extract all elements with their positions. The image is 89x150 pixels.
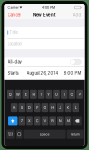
staticText: G (43, 105, 46, 110)
staticText: Starts (7, 71, 18, 76)
button[interactable]: W (15, 90, 21, 99)
staticText: D (28, 105, 31, 110)
staticText: N (59, 119, 62, 123)
button[interactable]: H (49, 103, 56, 112)
staticText: A (13, 105, 16, 110)
staticText: I (64, 92, 65, 97)
staticText: 123 (8, 132, 13, 136)
staticText: E (25, 92, 27, 97)
staticText: Q (9, 92, 12, 97)
button[interactable]: O (69, 90, 75, 99)
button[interactable]: J (57, 103, 64, 112)
button[interactable]: T (38, 90, 44, 99)
button[interactable]: S (18, 103, 25, 112)
staticText: U (55, 92, 58, 97)
button[interactable]: Cancel (4, 11, 23, 19)
button[interactable]: N (57, 116, 64, 125)
staticText: S (21, 105, 23, 110)
staticText: 8:00 PM (63, 71, 81, 76)
button[interactable]: Next keyboard (16, 130, 22, 139)
button[interactable]: Q (7, 90, 14, 99)
staticText: R (32, 92, 34, 97)
staticText: Location (7, 41, 21, 46)
staticText: All-day (7, 59, 21, 64)
staticText: V (43, 119, 46, 123)
staticText: T (40, 92, 42, 97)
staticText: August 26, 2014 (26, 71, 58, 76)
staticText: 4:00 PM (42, 5, 55, 10)
button[interactable]: A (11, 103, 17, 112)
button[interactable]: F (34, 103, 40, 112)
button[interactable]: P (76, 90, 83, 99)
staticText: W (16, 92, 20, 97)
staticText: O (70, 92, 73, 97)
button[interactable]: space (24, 130, 66, 139)
staticText: L (75, 105, 77, 110)
staticText: H (51, 105, 54, 110)
button[interactable]: Z (18, 116, 25, 125)
button[interactable]: L (72, 103, 79, 112)
button[interactable]: V (42, 116, 48, 125)
button[interactable]: return (67, 130, 84, 139)
staticText: K (66, 105, 69, 110)
button[interactable]: All-day toggle (72, 59, 81, 65)
button[interactable]: C (34, 116, 40, 125)
button[interactable]: Shift (8, 116, 17, 125)
button[interactable]: Add (69, 11, 84, 19)
button[interactable]: Delete (72, 116, 82, 125)
button[interactable]: K (65, 103, 71, 112)
button[interactable]: Title (3, 27, 85, 38)
button[interactable]: 123 (6, 130, 15, 139)
staticText: New Event (33, 12, 56, 18)
button[interactable]: X (26, 116, 33, 125)
button[interactable]: U (53, 90, 60, 99)
staticText: X (28, 119, 31, 123)
button[interactable]: B (49, 116, 56, 125)
staticText: M (66, 119, 69, 123)
staticText: Y (47, 92, 50, 97)
button[interactable]: D (26, 103, 33, 112)
staticText: B (51, 119, 54, 123)
staticText: P (79, 92, 81, 97)
staticText: J (59, 105, 61, 110)
staticText: return (71, 132, 80, 136)
staticText: space (40, 132, 50, 136)
staticText: Z (21, 119, 23, 123)
staticText: Add (72, 12, 81, 18)
staticText: F (36, 105, 38, 110)
staticText: C (36, 119, 39, 123)
button[interactable]: M (65, 116, 71, 125)
button[interactable]: R (30, 90, 37, 99)
staticText: Carrier (7, 5, 18, 10)
button[interactable]: Y (45, 90, 52, 99)
staticText: Title (9, 30, 17, 35)
button[interactable]: E (22, 90, 29, 99)
button[interactable]: G (42, 103, 48, 112)
button[interactable]: Starts (3, 67, 85, 80)
button[interactable]: Location (3, 38, 85, 49)
staticText: Cancel (7, 12, 20, 18)
button[interactable]: I (61, 90, 67, 99)
